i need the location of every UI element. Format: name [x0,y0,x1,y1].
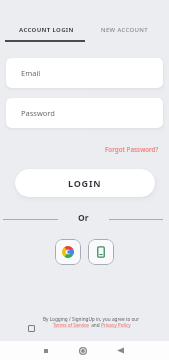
button[interactable]: Forgot Password? [95,145,169,154]
staticText: NEW ACCOUNT [101,26,148,34]
button[interactable]: Sign in with Google [55,239,81,265]
staticText: Or [78,212,89,224]
button[interactable]: NEW ACCOUNT [92,26,156,40]
button[interactable]: Recent apps [35,341,57,360]
staticText: Email [21,68,41,78]
button[interactable]: Terms of Service [53,322,90,328]
button[interactable]: LOGIN [15,169,155,197]
staticText: Forgot Password? [105,145,159,154]
button[interactable]: Privacy Policy [101,322,131,328]
staticText: and [90,322,101,328]
staticText: LOGIN [68,177,102,189]
staticText: By Logging / SigningUp in, you agree to … [43,316,140,322]
button[interactable]: Back [109,341,131,360]
button[interactable]: Sign in with phone [88,239,114,265]
staticText: Password [21,108,55,118]
button[interactable]: Password [6,98,163,128]
button[interactable]: Accept terms [28,325,35,332]
button[interactable]: Email [6,58,163,88]
staticText: ACCOUNT LOGIN [19,26,74,34]
button[interactable]: ACCOUNT LOGIN [0,26,92,40]
button[interactable]: Home [72,341,94,360]
